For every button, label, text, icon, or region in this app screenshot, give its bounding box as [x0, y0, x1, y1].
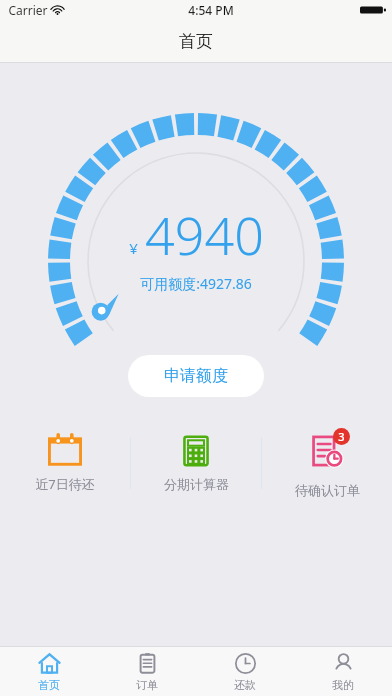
button[interactable]: 我的 [294, 647, 392, 696]
staticText: 近7日待还 [35, 475, 95, 493]
button[interactable]: 还款 [196, 647, 294, 696]
staticText: 还款 [234, 678, 256, 692]
other: 分期计算器 [179, 434, 213, 468]
staticText: 分期计算器 [164, 476, 229, 492]
staticText: ¥ [129, 238, 138, 258]
staticText: 4940 [145, 199, 264, 270]
staticText: 订单 [136, 678, 158, 692]
staticText: 3 [338, 429, 345, 444]
staticText: 首页 [179, 31, 213, 52]
staticText: 我的 [332, 678, 354, 692]
button[interactable]: 申请额度 [128, 355, 264, 397]
button[interactable]: 待确认订单 [262, 423, 392, 503]
other: 近7日待还 [48, 433, 82, 467]
staticText: 4:54 PM [188, 2, 234, 18]
staticText: Carrier [8, 2, 48, 18]
staticText: 待确认订单 [295, 482, 360, 498]
button[interactable]: 首页 [0, 647, 98, 696]
button[interactable]: 分期计算器 [131, 423, 261, 503]
staticText: 申请额度 [164, 366, 228, 386]
staticText: 可用额度:4927.86 [140, 274, 252, 293]
button[interactable]: 订单 [98, 647, 196, 696]
other: 待确认订单 [311, 435, 343, 467]
staticText: 首页 [38, 678, 60, 692]
button[interactable]: 近7日待还 [0, 423, 130, 503]
